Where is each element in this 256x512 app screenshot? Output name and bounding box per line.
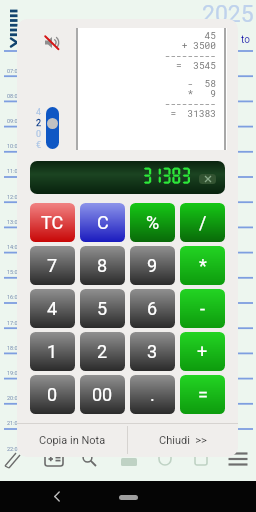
staticText: 2 (36, 118, 42, 129)
staticText: 17:00 (7, 320, 21, 326)
staticText: C (97, 212, 109, 233)
button[interactable]: + (180, 332, 225, 371)
staticText: 11:00 (7, 168, 21, 174)
button[interactable]: Backspace (199, 174, 216, 184)
staticText: % (146, 212, 160, 233)
staticText: 14:00 (7, 244, 21, 250)
button[interactable]: 0 (30, 375, 75, 414)
staticText: 6 (147, 298, 158, 319)
staticText: 22:00 (7, 446, 21, 452)
staticText: 10:00 (7, 143, 21, 149)
staticText: --------- (164, 97, 216, 107)
staticText: 0 (47, 384, 58, 405)
staticText: * 9 (187, 87, 216, 97)
staticText: 5 (97, 298, 108, 319)
staticText: 45 (204, 29, 216, 39)
staticText: 1 (47, 341, 58, 362)
staticText: 20:00 (7, 395, 21, 401)
button[interactable]: Copia in Nota (17, 423, 127, 457)
staticText: 0 (36, 129, 42, 140)
staticText: € (36, 140, 42, 151)
staticText: = 31383 (170, 107, 216, 117)
staticText: --------- (164, 49, 216, 59)
staticText: 18:00 (7, 345, 21, 351)
button[interactable]: Chiudi >> (127, 423, 238, 457)
staticText: 4 (36, 107, 42, 118)
button[interactable]: C (80, 203, 125, 242)
staticText: 7 (47, 255, 58, 276)
button[interactable]: 5 (80, 289, 125, 328)
staticText: = 3545 (176, 59, 216, 69)
button[interactable]: Home (119, 495, 138, 500)
button[interactable]: - (180, 289, 225, 328)
staticText: 00 (92, 384, 113, 405)
staticText: - 58 (187, 77, 216, 87)
staticText: 12:00 (7, 194, 21, 200)
button[interactable]: 00 (80, 375, 125, 414)
button[interactable]: % (130, 203, 175, 242)
staticText: = (198, 384, 208, 405)
button[interactable]: Back (47, 481, 65, 512)
staticText: + 3500 (181, 39, 216, 49)
staticText: 16:00 (7, 294, 21, 300)
staticText: to (241, 34, 250, 46)
staticText: 07:00 (7, 68, 21, 74)
staticText: 2 (97, 341, 108, 362)
button[interactable]: Mute sound (43, 34, 59, 50)
button[interactable]: Calculator (44, 452, 64, 467)
button[interactable]: TC (30, 203, 75, 242)
staticText: 2025 (202, 1, 254, 28)
button[interactable]: Backspace (30, 161, 225, 194)
button[interactable]: Decimal places slider (46, 107, 59, 149)
button[interactable]: 6 (130, 289, 175, 328)
button[interactable]: / (180, 203, 225, 242)
staticText: 21:00 (7, 420, 21, 426)
button[interactable]: 3 (130, 332, 175, 371)
staticText: 9 (147, 255, 158, 276)
button[interactable]: 2 (80, 332, 125, 371)
staticText: / (199, 212, 207, 233)
staticText: 15:00 (7, 269, 21, 275)
button[interactable]: 1 (30, 332, 75, 371)
staticText: + (197, 341, 208, 362)
staticText: 4 (47, 298, 58, 319)
staticText: * (199, 255, 207, 276)
staticText: . (150, 384, 155, 405)
button[interactable]: 7 (30, 246, 75, 285)
staticText: Chiudi >> (159, 434, 207, 447)
staticText: 13:00 (7, 219, 21, 225)
button[interactable]: 4 (30, 289, 75, 328)
staticText: TC (41, 212, 64, 233)
button[interactable]: 9 (130, 246, 175, 285)
button[interactable]: 8 (80, 246, 125, 285)
staticText: 3 (147, 341, 158, 362)
staticText: 08:00 (7, 93, 21, 99)
staticText: 8 (97, 255, 108, 276)
staticText: Copia in Nota (39, 434, 106, 447)
staticText: 09:00 (7, 118, 21, 124)
button[interactable]: . (130, 375, 175, 414)
button[interactable]: * (180, 246, 225, 285)
button[interactable]: = (180, 375, 225, 414)
staticText: 19:00 (7, 370, 21, 376)
staticText: - (200, 298, 205, 319)
